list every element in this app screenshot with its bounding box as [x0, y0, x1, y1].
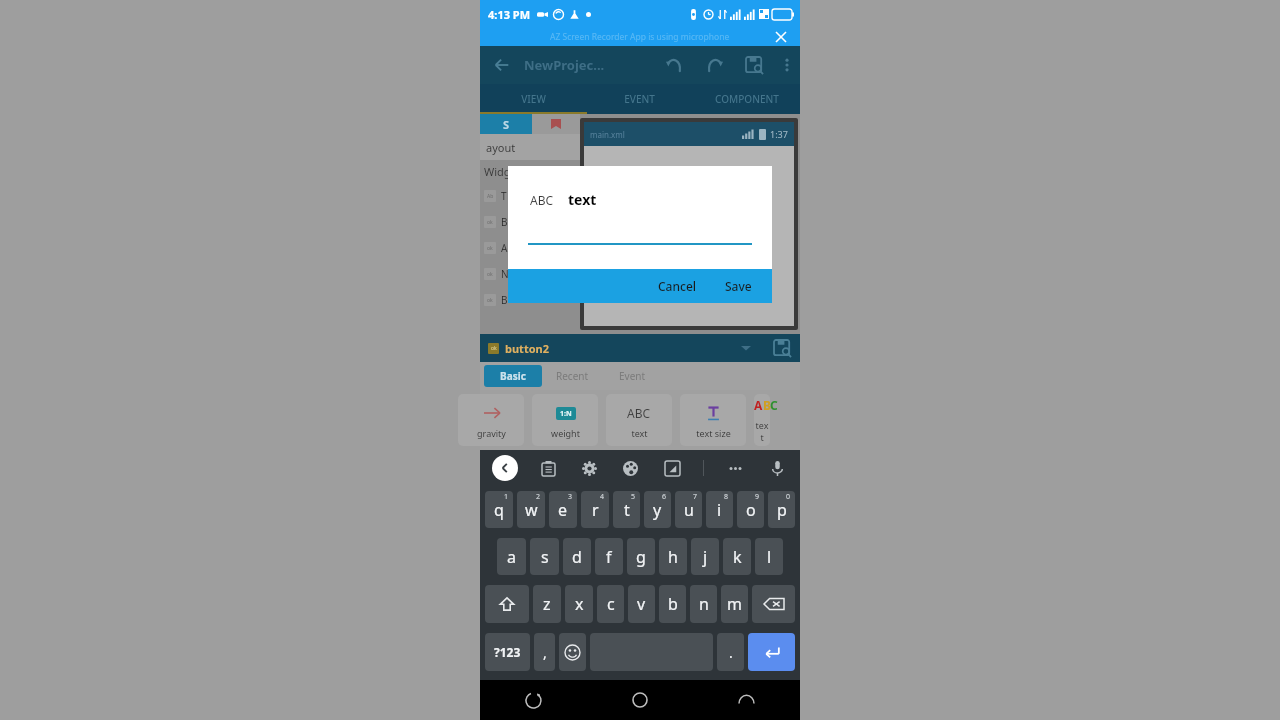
button[interactable]: q	[485, 491, 513, 528]
staticText: COMPONENT	[715, 92, 779, 106]
button[interactable]: x	[565, 585, 593, 623]
button[interactable]: Enter	[748, 633, 795, 671]
staticText: A	[754, 397, 763, 413]
staticText: b	[668, 593, 678, 615]
staticText: .	[729, 643, 733, 662]
button[interactable]: ABC	[606, 394, 672, 446]
button[interactable]: Recent	[542, 365, 602, 387]
button[interactable]: .	[717, 633, 744, 671]
button[interactable]: o	[737, 491, 764, 528]
button[interactable]: Redo	[694, 46, 734, 84]
button[interactable]: ,	[534, 633, 555, 671]
button[interactable]: i	[706, 491, 733, 528]
button[interactable]: u	[675, 491, 702, 528]
staticText: 3	[568, 492, 573, 502]
button[interactable]: b	[659, 585, 686, 623]
button[interactable]: t	[613, 491, 640, 528]
staticText: main.xml	[590, 129, 625, 140]
button[interactable]: Save	[715, 269, 762, 303]
staticText: ,	[543, 643, 547, 662]
button[interactable]: Voice input	[766, 457, 788, 479]
button[interactable]: Save component	[773, 339, 792, 358]
staticText: t	[624, 499, 630, 521]
button[interactable]: ok	[480, 209, 580, 235]
button[interactable]: c	[597, 585, 624, 623]
button[interactable]: w	[517, 491, 545, 528]
staticText: ok	[487, 271, 493, 278]
button[interactable]: COMPONENT	[693, 84, 800, 114]
staticText: 6	[662, 492, 667, 502]
button[interactable]: m	[721, 585, 748, 623]
staticText: Widg	[484, 164, 511, 179]
staticText: text	[568, 190, 597, 209]
button[interactable]: S	[480, 114, 532, 134]
button[interactable]: Basic	[484, 365, 542, 387]
button[interactable]: d	[563, 538, 591, 575]
staticText: 0	[786, 492, 791, 502]
button[interactable]: Settings	[578, 457, 600, 479]
staticText: e	[558, 499, 568, 521]
button[interactable]: a	[497, 538, 526, 575]
staticText: r	[592, 499, 599, 521]
staticText: text size	[696, 427, 731, 439]
staticText: f	[606, 546, 612, 568]
button[interactable]: ok	[480, 261, 580, 287]
button[interactable]: Resize	[661, 457, 683, 479]
button[interactable]: Clipboard	[537, 457, 559, 479]
button[interactable]: Close	[776, 32, 786, 42]
staticText: s	[541, 546, 549, 568]
button[interactable]: Recents	[480, 680, 586, 720]
button[interactable]: v	[628, 585, 655, 623]
staticText: n	[699, 593, 709, 615]
button[interactable]: h	[659, 538, 687, 575]
button[interactable]: More options	[774, 46, 800, 84]
button[interactable]: gravity	[458, 394, 524, 446]
button[interactable]: Shift	[485, 585, 529, 623]
staticText: c	[607, 593, 615, 615]
staticText: B	[501, 215, 508, 229]
button[interactable]: Backspace	[752, 585, 795, 623]
staticText: Cancel	[658, 278, 697, 294]
staticText: v	[637, 593, 646, 615]
button[interactable]: Home	[586, 680, 693, 720]
button[interactable]: text size	[680, 394, 746, 446]
button[interactable]: f	[595, 538, 623, 575]
staticText: x	[575, 593, 584, 615]
staticText: p	[777, 499, 787, 521]
button[interactable]: l	[755, 538, 783, 575]
button[interactable]: g	[627, 538, 655, 575]
button[interactable]: Emoji	[559, 633, 586, 671]
button[interactable]: k	[723, 538, 751, 575]
button[interactable]: Cancel	[648, 269, 707, 303]
button[interactable]: Undo	[654, 46, 694, 84]
button[interactable]: Back	[693, 680, 800, 720]
button[interactable]: VIEW	[480, 84, 586, 114]
staticText: 1:37	[770, 128, 788, 140]
button[interactable]: Collapse	[492, 455, 518, 481]
button[interactable]: Event	[602, 365, 662, 387]
button[interactable]: A	[754, 394, 770, 446]
button[interactable]: Back	[480, 46, 524, 84]
button[interactable]: z	[533, 585, 561, 623]
button[interactable]: ok	[480, 235, 580, 261]
button[interactable]: p	[768, 491, 795, 528]
button[interactable]: 1:N	[532, 394, 598, 446]
button[interactable]: n	[690, 585, 717, 623]
button[interactable]: r	[581, 491, 609, 528]
button[interactable]: y	[644, 491, 671, 528]
staticText: ok	[487, 219, 493, 226]
button[interactable]: Theme	[619, 457, 641, 479]
button[interactable]: ok	[480, 287, 580, 313]
button[interactable]: EVENT	[586, 84, 693, 114]
button[interactable]: Ab	[480, 183, 580, 209]
button[interactable]: s	[530, 538, 559, 575]
button[interactable]: ?123	[485, 633, 530, 671]
button[interactable]: More	[724, 457, 746, 479]
button[interactable]: j	[691, 538, 719, 575]
button[interactable]: e	[549, 491, 577, 528]
button[interactable]: Dropdown	[741, 343, 751, 353]
button[interactable]	[532, 114, 580, 134]
button[interactable]: Save	[734, 46, 774, 84]
